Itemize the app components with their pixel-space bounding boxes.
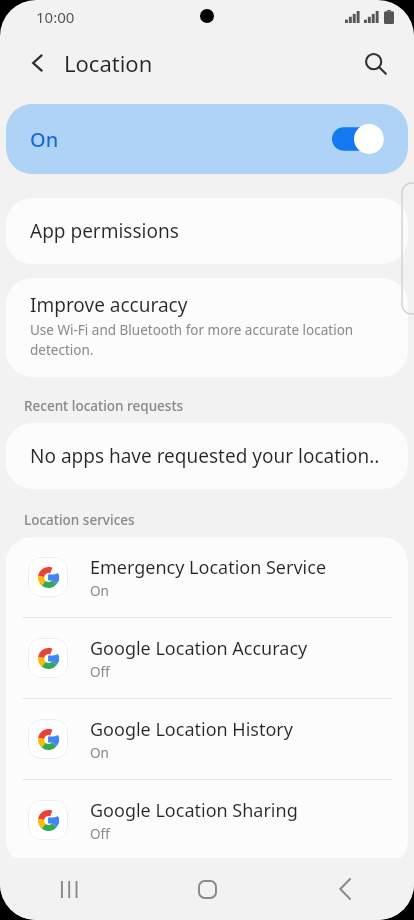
staticText: 10:00 — [36, 7, 75, 27]
button[interactable]: No apps have requested your location.. — [6, 423, 408, 489]
staticText: Google Location History — [90, 717, 293, 742]
staticText: App permissions — [30, 218, 179, 244]
staticText: Recent location requests — [24, 397, 184, 415]
button[interactable]: Improve accuracy — [6, 278, 408, 377]
staticText: Location — [64, 48, 153, 78]
button[interactable]: App permissions — [6, 198, 408, 264]
staticText: Location services — [24, 511, 135, 529]
button[interactable]: Google Location History — [6, 699, 408, 779]
staticText: Emergency Location Service — [90, 555, 327, 580]
staticText: On — [30, 126, 59, 153]
button[interactable]: Google Location Sharing — [6, 780, 408, 860]
button[interactable]: Back — [276, 858, 414, 920]
button[interactable]: Search — [354, 42, 396, 84]
staticText: Google Location Accuracy — [90, 636, 308, 661]
button[interactable]: Google Location Accuracy — [6, 618, 408, 698]
staticText: On — [90, 582, 109, 600]
staticText: No apps have requested your location.. — [30, 443, 380, 469]
staticText: Improve accuracy — [30, 292, 188, 318]
button[interactable]: Recents — [0, 858, 138, 920]
button[interactable]: Home — [138, 858, 276, 920]
staticText: Use Wi-Fi and Bluetooth for more accurat… — [30, 321, 388, 359]
staticText: On — [90, 744, 109, 762]
button[interactable]: On — [6, 104, 408, 174]
staticText: Off — [90, 825, 110, 843]
staticText: Google Location Sharing — [90, 798, 298, 823]
staticText: Off — [90, 663, 110, 681]
button[interactable]: Emergency Location Service — [6, 537, 408, 617]
button[interactable]: Back — [18, 43, 58, 83]
